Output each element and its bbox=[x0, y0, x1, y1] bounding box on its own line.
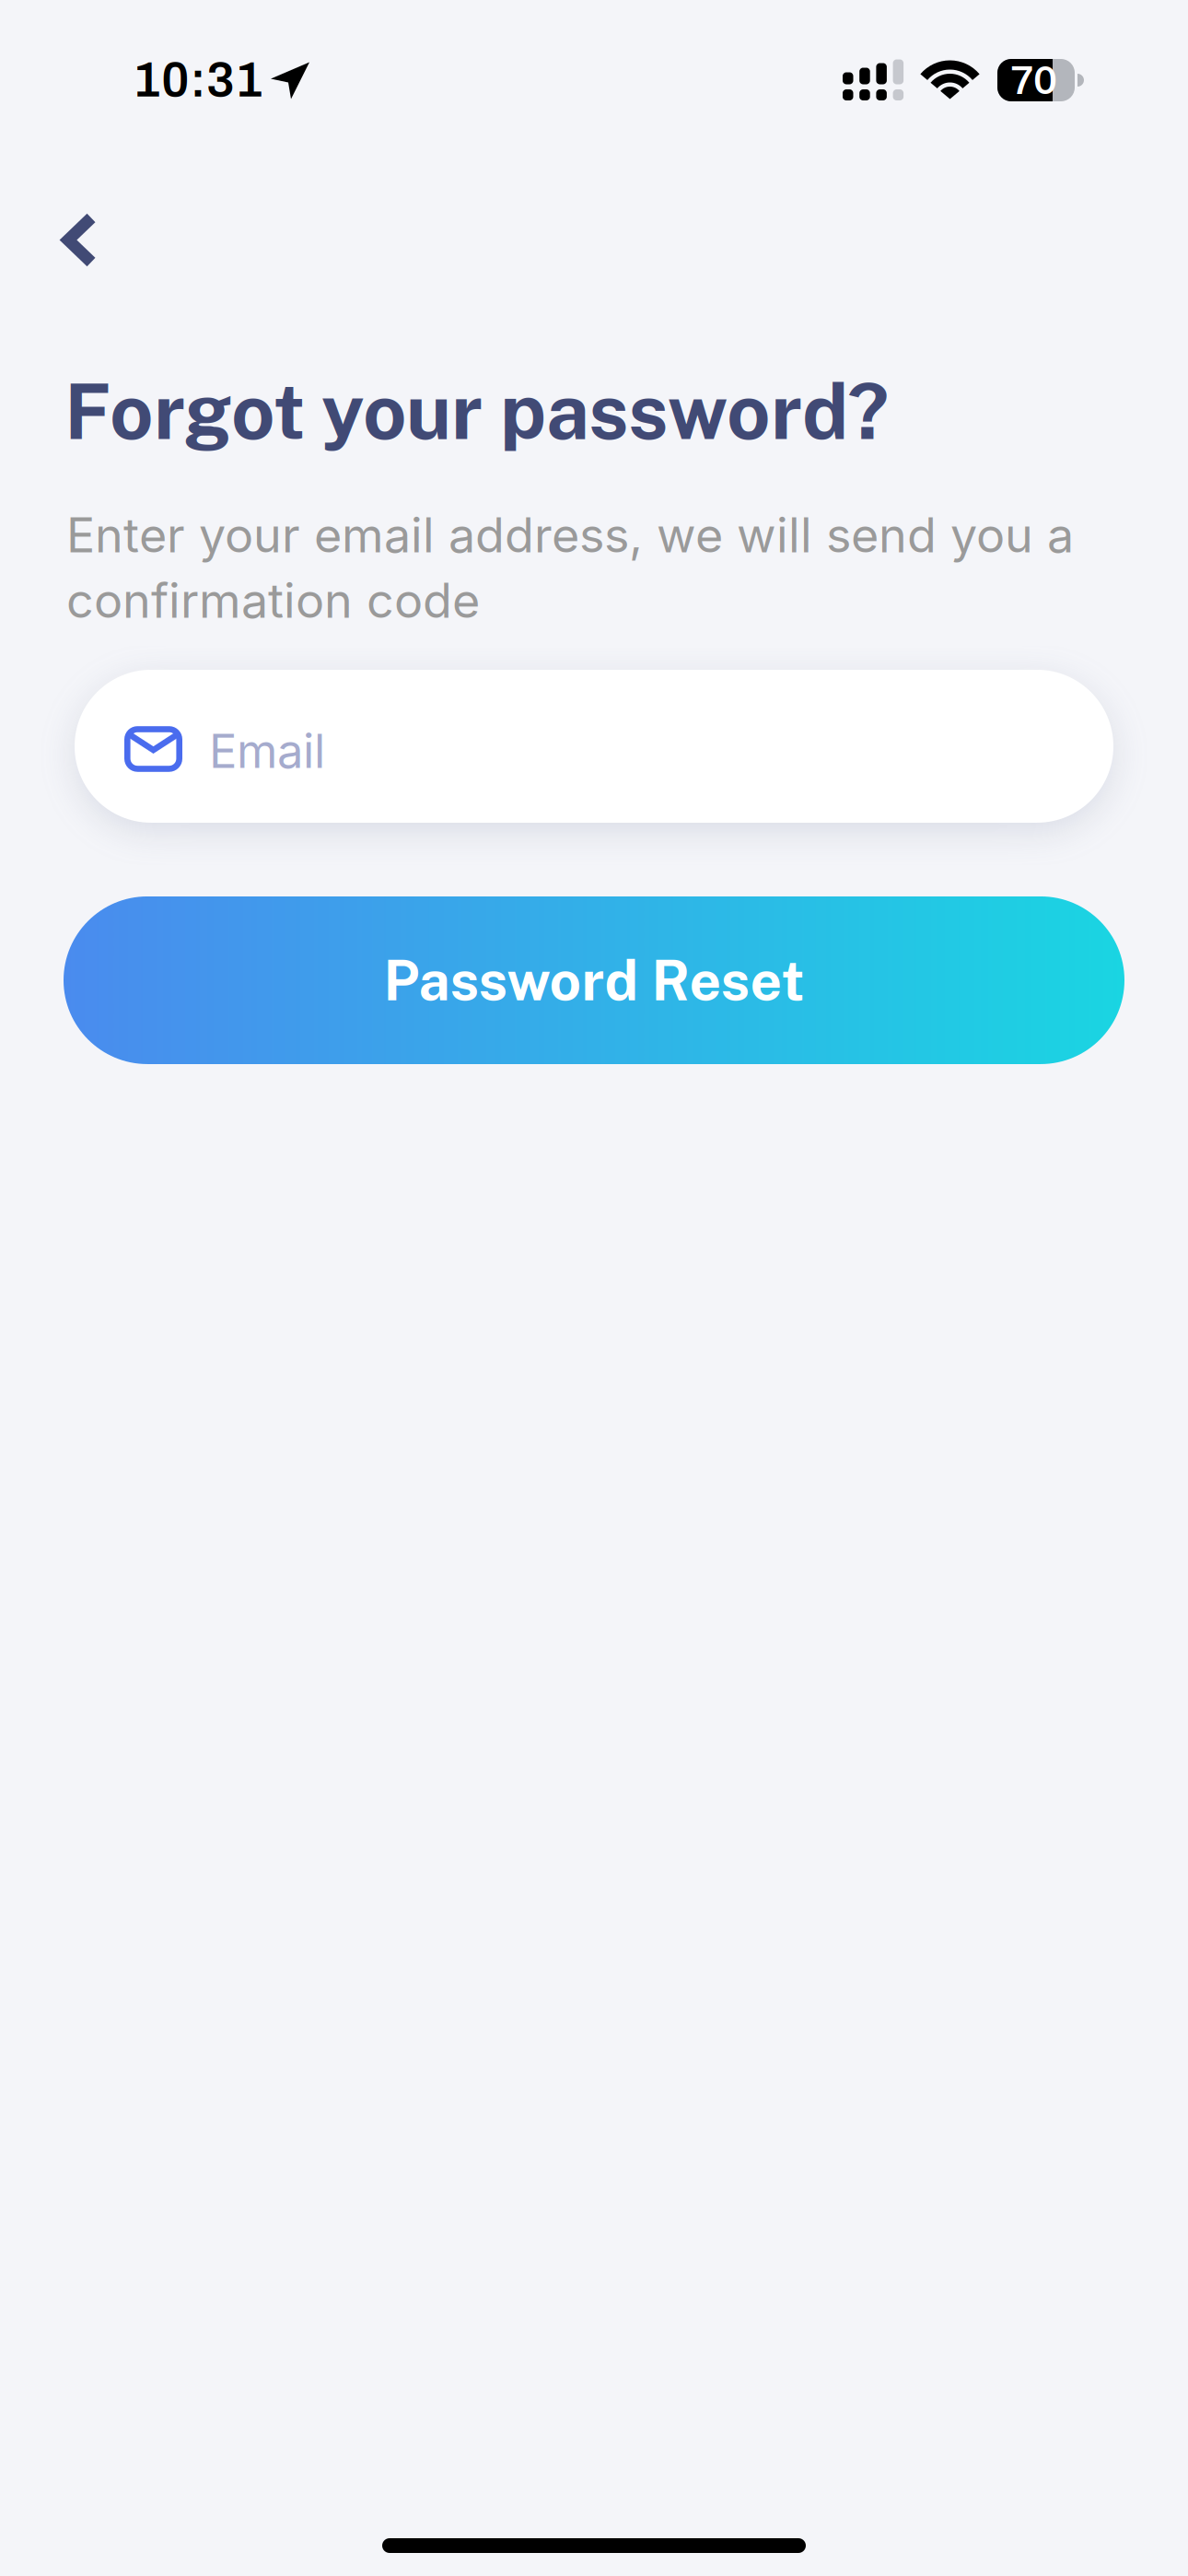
staticText: 10:31 bbox=[133, 53, 263, 107]
staticText: Forgot your password? bbox=[64, 367, 889, 456]
staticText: Email bbox=[209, 723, 325, 779]
staticText: Password Reset bbox=[384, 948, 804, 1013]
staticText: Enter your email address, we will send y… bbox=[66, 506, 1074, 629]
button[interactable]: Back bbox=[63, 186, 173, 294]
staticText: 70 bbox=[1010, 58, 1057, 103]
button[interactable]: Password Reset bbox=[64, 896, 1124, 1064]
